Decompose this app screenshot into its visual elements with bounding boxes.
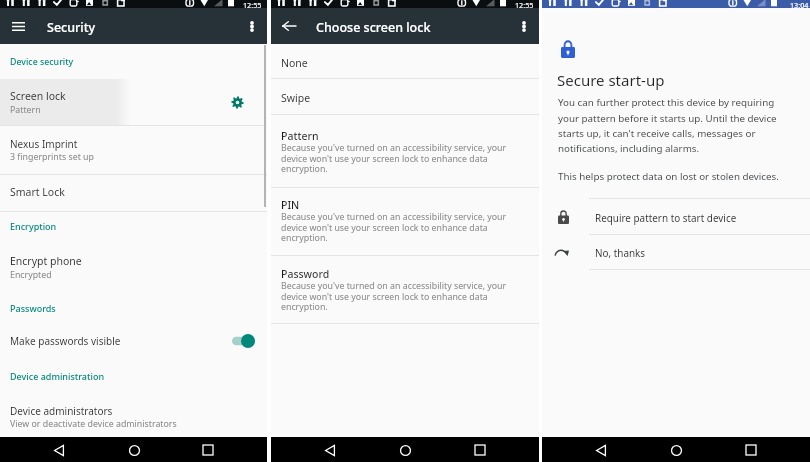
button[interactable]: Screen lock [0, 79, 267, 125]
button[interactable]: Back [590, 439, 612, 461]
staticText: PIN [281, 198, 300, 212]
button[interactable]: Back [48, 439, 70, 461]
staticText: Nexus Imprint [10, 137, 78, 151]
button[interactable]: Open navigation drawer [6, 8, 30, 44]
button[interactable]: Recent apps [740, 439, 762, 461]
button[interactable]: Navigate up [277, 8, 301, 44]
button[interactable]: PIN [271, 184, 539, 255]
button[interactable]: Back [319, 439, 341, 461]
staticText: None [281, 56, 308, 70]
staticText: View or deactivate device administrators [10, 418, 177, 430]
staticText: This helps protect data on lost or stole… [558, 170, 779, 183]
staticText: 3 fingerprints set up [10, 151, 94, 163]
button[interactable]: Swipe [271, 79, 539, 114]
staticText: Pattern [281, 129, 319, 143]
staticText: Pattern [10, 104, 41, 116]
button[interactable]: Home [665, 439, 687, 461]
staticText: Password [281, 267, 330, 281]
staticText: 12:55 [243, 0, 262, 8]
button[interactable]: Home [123, 439, 145, 461]
staticText: Because you've turned on an accessibilit… [281, 142, 515, 175]
staticText: Choose screen lock [316, 19, 431, 36]
button[interactable]: Require pattern to start device [542, 199, 810, 234]
button[interactable]: None [271, 48, 539, 78]
staticText: Device security [10, 56, 74, 68]
staticText: Swipe [281, 91, 311, 105]
staticText: 12:55 [515, 0, 534, 8]
staticText: Device administration [10, 370, 105, 382]
staticText: You can further protect this device by r… [558, 96, 790, 155]
staticText: Because you've turned on an accessibilit… [281, 280, 515, 313]
staticText: Encrypt phone [10, 254, 82, 268]
staticText: No, thanks [595, 246, 646, 259]
button[interactable]: Recent apps [197, 439, 219, 461]
button[interactable]: More options [512, 8, 536, 44]
staticText: Smart Lock [10, 185, 65, 199]
button[interactable]: Make passwords visible [0, 325, 267, 359]
button[interactable]: No, thanks [542, 235, 810, 269]
staticText: Secure start-up [557, 70, 665, 90]
button[interactable]: Password [271, 253, 539, 323]
staticText: Passwords [10, 302, 56, 314]
button[interactable]: More options [240, 8, 264, 44]
button[interactable]: Encrypt phone [0, 243, 267, 291]
button[interactable]: Pattern [271, 115, 539, 187]
staticText: Device administrators [10, 404, 113, 418]
staticText: Because you've turned on an accessibilit… [281, 211, 515, 244]
staticText: Require pattern to start device [595, 211, 737, 224]
staticText: 13:04 [790, 0, 809, 8]
button[interactable]: Smart Lock [0, 175, 267, 211]
button[interactable]: Nexus Imprint [0, 126, 267, 174]
button[interactable]: Device administrators [0, 395, 267, 437]
staticText: Encryption [10, 220, 57, 232]
staticText: Make passwords visible [10, 334, 121, 348]
button[interactable]: Screen lock settings [225, 90, 249, 114]
button[interactable]: Recent apps [469, 439, 491, 461]
staticText: Encrypted [10, 269, 52, 281]
button[interactable]: Home [394, 439, 416, 461]
staticText: Security [47, 19, 96, 36]
staticText: Screen lock [10, 89, 66, 103]
